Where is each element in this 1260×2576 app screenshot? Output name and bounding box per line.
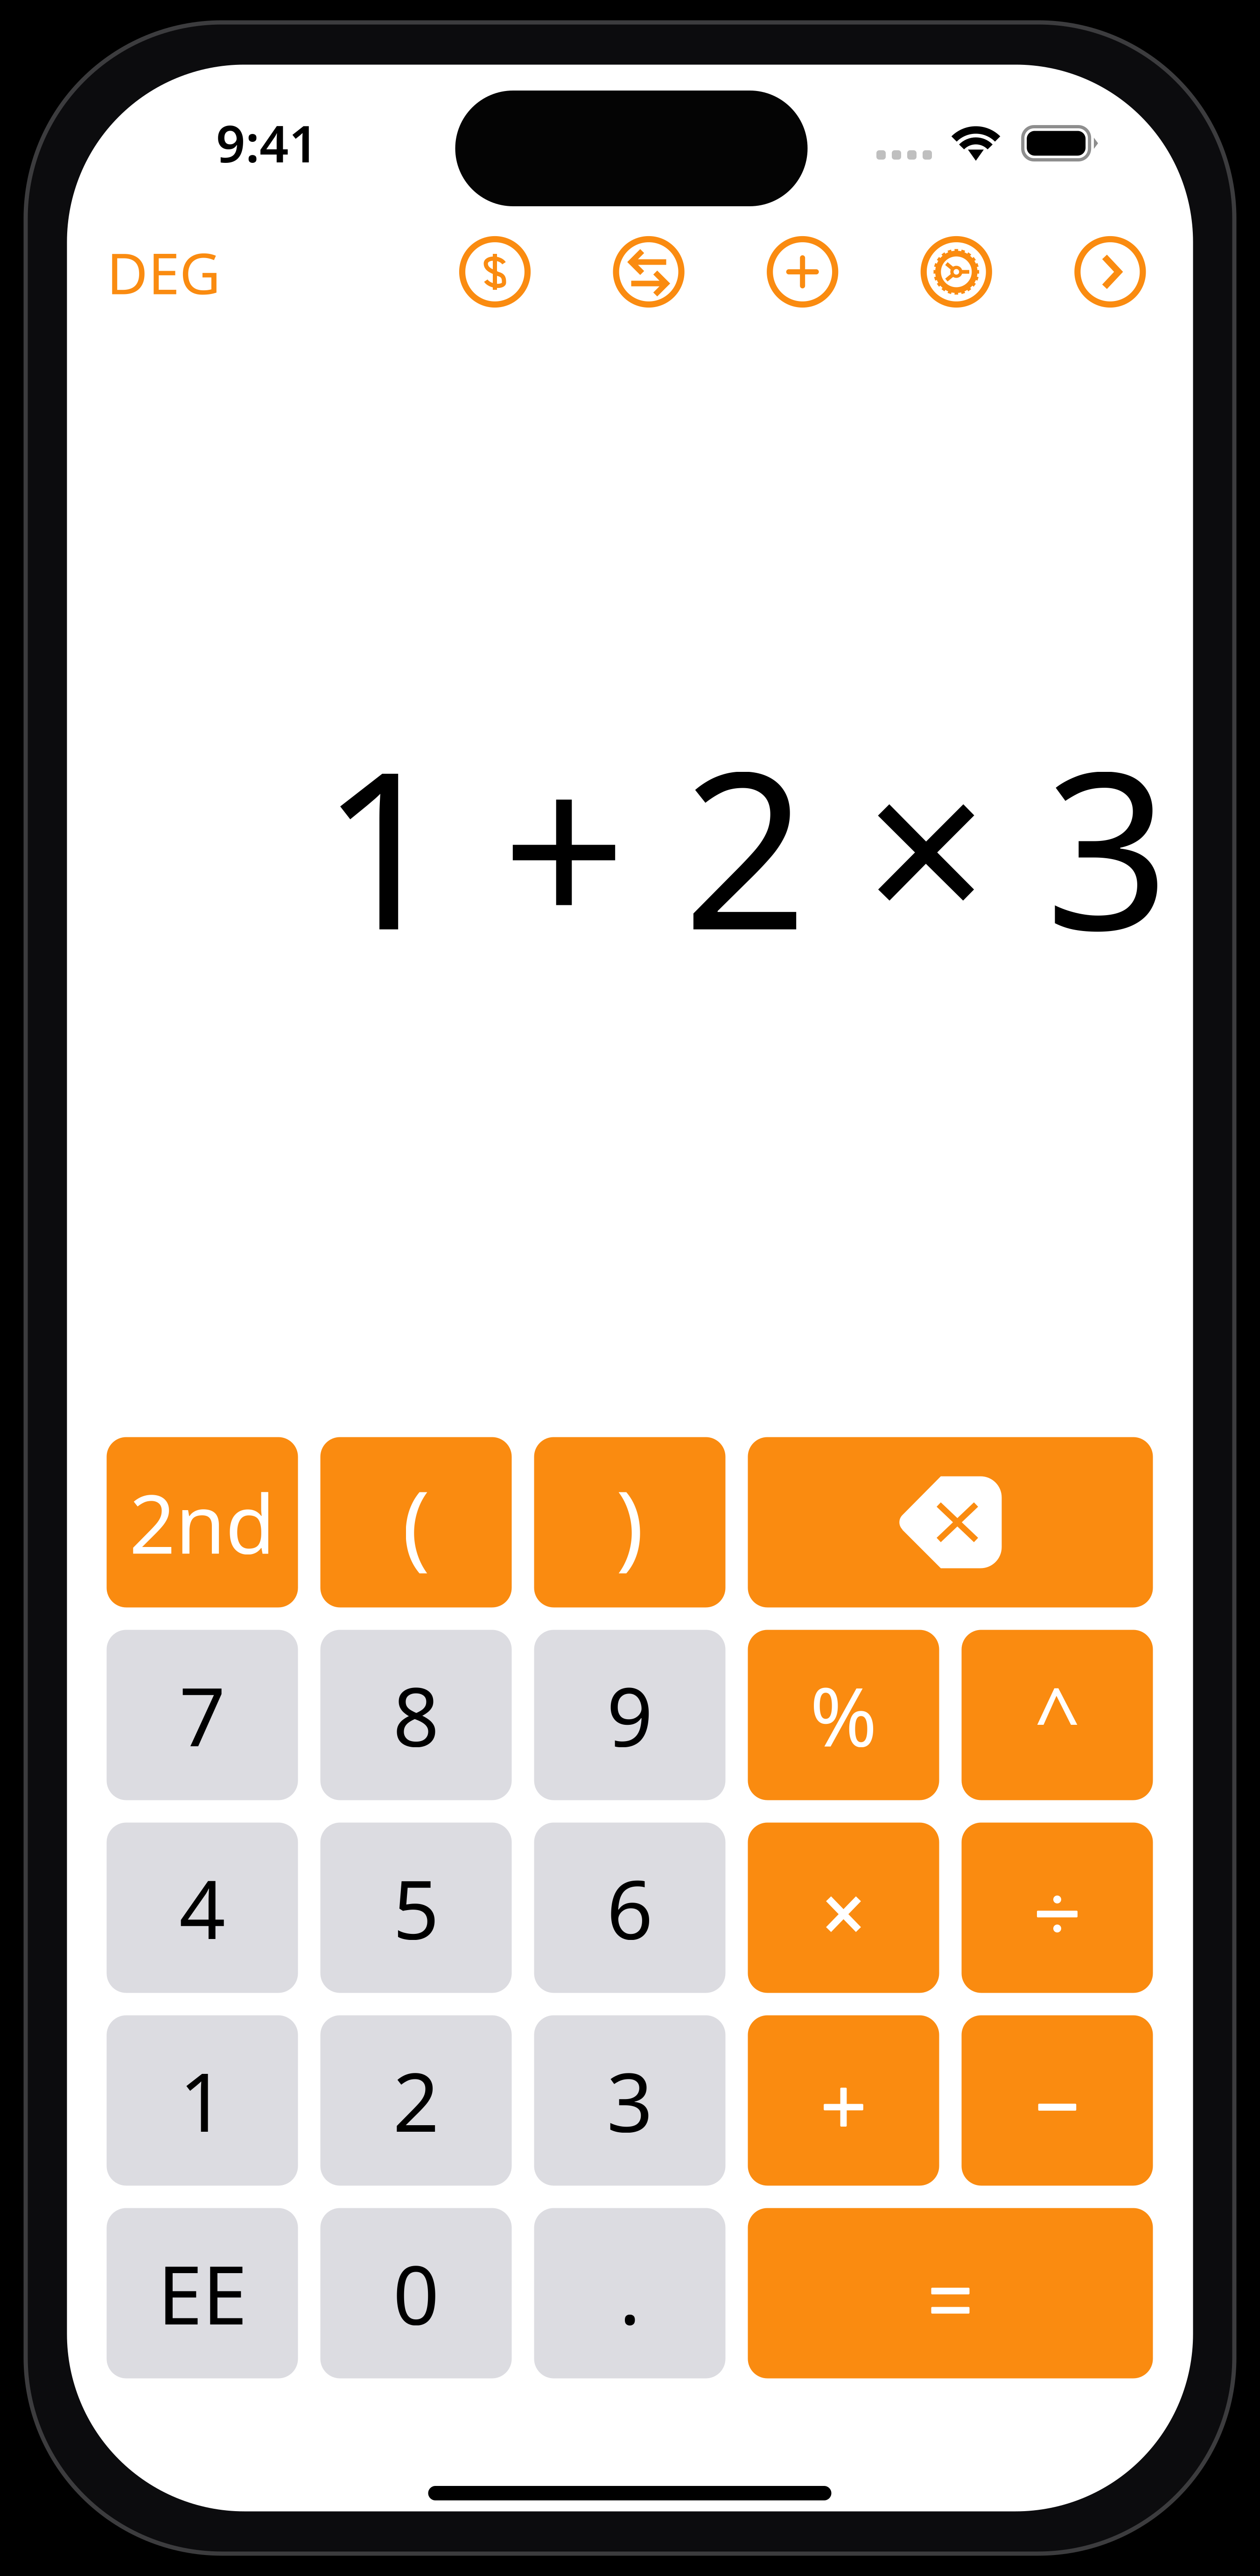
staticText: 5 [393,1854,439,1961]
button[interactable]: 0 [320,2208,512,2378]
button[interactable]: . [534,2208,725,2378]
staticText: EE [157,2239,247,2347]
button[interactable]: 8 [320,1630,512,1800]
button[interactable]: More [1073,234,1147,309]
staticText: 7 [179,1661,225,1769]
button[interactable]: 2 [320,2015,512,2186]
staticText: 8 [393,1661,439,1769]
staticText: 3 [607,2047,653,2154]
button[interactable]: 7 [107,1630,298,1800]
staticText: 4 [179,1854,225,1961]
button[interactable]: Divide [962,1823,1153,1993]
button[interactable]: 9 [534,1630,725,1800]
button[interactable]: ^ [962,1630,1153,1800]
button[interactable]: 6 [534,1823,725,1993]
staticText: 9:41 [216,109,318,176]
button[interactable]: Multiply [748,1823,939,1993]
staticText: 0 [393,2239,439,2347]
staticText: 1 [179,2047,225,2154]
button[interactable]: Plus [748,2015,939,2186]
button[interactable]: ) [534,1437,725,1607]
staticText: . [619,2239,640,2347]
staticText: ^ [1034,1661,1080,1769]
staticText: ) [616,1460,644,1584]
button[interactable]: EE [107,2208,298,2378]
button[interactable]: 2nd [107,1437,298,1607]
button[interactable]: 1 [107,2015,298,2186]
button[interactable]: ( [320,1437,512,1607]
staticText: 6 [607,1854,653,1961]
button[interactable]: Settings [919,234,994,309]
button[interactable]: Equals [748,2208,1153,2378]
button[interactable]: Delete [748,1437,1153,1607]
button[interactable]: DEG [103,235,224,310]
staticText: DEG [107,235,220,310]
staticText: 9 [607,1661,653,1769]
staticText: ( [402,1460,430,1584]
button[interactable]: Currency [458,234,532,309]
button[interactable]: Convert [611,234,686,309]
button[interactable]: Add [765,234,840,309]
button[interactable]: 5 [320,1823,512,1993]
button[interactable]: 3 [534,2015,725,2186]
staticText: 2 [393,2047,439,2154]
button[interactable]: Minus [962,2015,1153,2186]
staticText: 2nd [129,1469,275,1576]
staticText: % [810,1661,877,1769]
button[interactable]: 4 [107,1823,298,1993]
staticText: 1 + 2 × 3 [321,700,1170,989]
button[interactable]: % [748,1630,939,1800]
